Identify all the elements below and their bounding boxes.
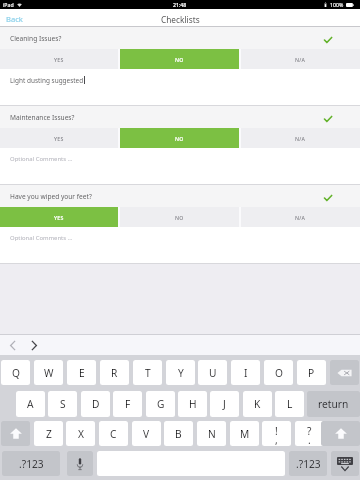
button[interactable]: YES (0, 128, 118, 148)
staticText: .?123 (19, 457, 44, 471)
staticText: YES (54, 56, 64, 63)
button[interactable]: Dictate (67, 451, 93, 476)
staticText: P (308, 366, 315, 380)
button[interactable]: T (133, 360, 162, 385)
button[interactable]: return (307, 391, 360, 417)
button[interactable]: C (99, 421, 128, 446)
button[interactable]: .?123 (2, 451, 60, 476)
button[interactable]: Y (166, 360, 195, 385)
staticText: Cleaning Issues? (10, 34, 62, 43)
button[interactable]: J (210, 391, 239, 417)
staticText: O (275, 366, 283, 380)
staticText: return (318, 397, 349, 411)
staticText: D (92, 397, 100, 411)
button[interactable]: NO (120, 49, 239, 69)
button[interactable]: K (243, 391, 272, 417)
staticText: Maintenance Issues? (10, 113, 75, 122)
button[interactable]: YES (0, 49, 118, 69)
button[interactable]: N/A (241, 128, 360, 148)
button[interactable]: G (146, 391, 175, 417)
staticText: . (308, 433, 311, 446)
staticText: Back (6, 14, 23, 24)
button[interactable]: N (197, 421, 226, 446)
button[interactable]: A (16, 391, 45, 417)
button[interactable]: H (178, 391, 207, 417)
button[interactable]: W (34, 360, 63, 385)
button[interactable]: Cleaning Issues? (0, 27, 360, 49)
button[interactable]: X (66, 421, 95, 446)
staticText: Light dusting suggested (10, 76, 84, 85)
staticText: E (79, 366, 85, 380)
staticText: YES (54, 135, 64, 142)
staticText: R (111, 366, 118, 380)
button[interactable]: I (231, 360, 260, 385)
button[interactable]: Optional Comments ... (0, 227, 360, 263)
button[interactable]: YES (0, 207, 118, 227)
button[interactable]: ? (295, 421, 324, 446)
button[interactable]: V (132, 421, 161, 446)
staticText: W (44, 366, 54, 380)
staticText: J (223, 397, 226, 411)
button[interactable]: .?123 (289, 451, 327, 476)
staticText: T (145, 366, 151, 380)
button[interactable]: E (67, 360, 96, 385)
button[interactable]: R (100, 360, 129, 385)
staticText: I (244, 366, 248, 380)
button[interactable]: Hide keyboard (331, 451, 359, 476)
button[interactable]: Have you wiped your feet? (0, 185, 360, 207)
staticText: G (157, 397, 165, 411)
staticText: Q (12, 366, 20, 380)
button[interactable]: Next field (27, 336, 40, 355)
button[interactable]: D (81, 391, 110, 417)
button[interactable]: Optional Comments ... (0, 148, 360, 184)
button[interactable]: Light dusting suggested (0, 69, 360, 105)
button[interactable]: U (198, 360, 227, 385)
button[interactable]: Shift (1, 421, 30, 446)
button[interactable]: Shift (321, 421, 360, 446)
button[interactable]: M (230, 421, 259, 446)
button[interactable]: B (164, 421, 193, 446)
button[interactable]: F (113, 391, 142, 417)
button[interactable]: ! (262, 421, 291, 446)
button[interactable]: Previous field (6, 336, 19, 355)
staticText: NO (175, 214, 184, 221)
staticText: ? (307, 424, 312, 438)
button[interactable]: N/A (241, 207, 360, 227)
staticText: iPad (3, 1, 14, 8)
button[interactable]: N/A (241, 49, 360, 69)
staticText: ! (275, 424, 278, 438)
staticText: NO (175, 56, 184, 63)
staticText: N/A (295, 56, 306, 63)
button[interactable]: S (48, 391, 77, 417)
staticText: 100% (330, 1, 344, 8)
staticText: B (175, 427, 182, 441)
staticText: U (209, 366, 217, 380)
button[interactable]: Backspace (330, 360, 359, 385)
staticText: F (125, 397, 131, 411)
staticText: 21:48 (173, 1, 187, 8)
staticText: C (110, 427, 117, 441)
staticText: Checklists (161, 14, 200, 25)
staticText: Have you wiped your feet? (10, 192, 92, 201)
staticText: H (189, 397, 197, 411)
button[interactable]: NO (120, 207, 239, 227)
button[interactable]: O (264, 360, 293, 385)
staticText: A (27, 397, 34, 411)
button[interactable]: NO (120, 128, 239, 148)
staticText: L (287, 397, 293, 411)
staticText: Y (178, 366, 184, 380)
button[interactable]: Q (1, 360, 30, 385)
staticText: YES (54, 214, 64, 221)
button[interactable]: Z (34, 421, 63, 446)
button[interactable]: Back (6, 14, 23, 24)
staticText: Z (46, 427, 52, 441)
button[interactable]: P (297, 360, 326, 385)
staticText: M (240, 427, 250, 441)
button[interactable]: Maintenance Issues? (0, 106, 360, 128)
staticText: , (275, 433, 278, 446)
staticText: N/A (295, 214, 306, 221)
button[interactable]: L (275, 391, 304, 417)
staticText: N/A (295, 135, 306, 142)
staticText: X (78, 427, 84, 441)
